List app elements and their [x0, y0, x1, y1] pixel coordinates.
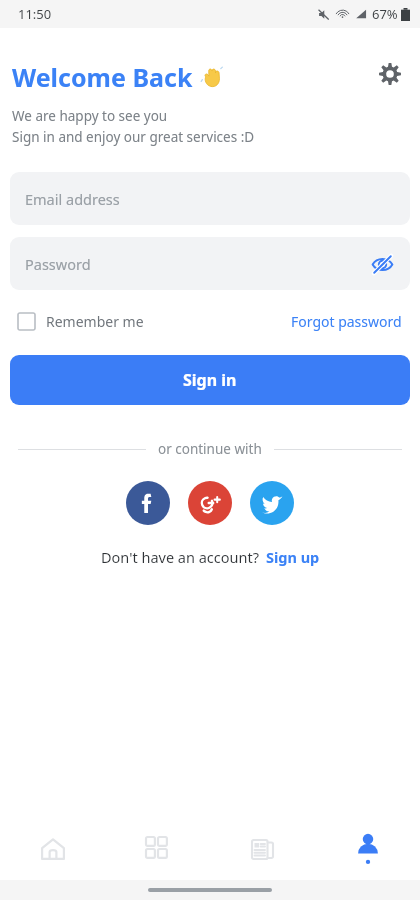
button[interactable]: Settings [368, 52, 412, 96]
staticText: Forgot password [291, 312, 402, 331]
staticText: Sign in and enjoy our great services :D [12, 128, 255, 146]
staticText: Sign in [183, 369, 237, 391]
button[interactable]: Profile [315, 818, 420, 880]
button[interactable]: Show password [364, 246, 400, 282]
staticText: 67% [372, 5, 398, 23]
staticText: Remember me [46, 312, 144, 331]
staticText: Sign up [266, 547, 320, 567]
button[interactable]: Categories [105, 818, 210, 880]
button[interactable]: Remember me [18, 312, 144, 331]
staticText: Don't have an account? [101, 547, 259, 567]
staticText: Password [25, 254, 91, 274]
button[interactable]: Sign in with Twitter [250, 481, 294, 525]
staticText: 11:50 [18, 5, 52, 23]
button[interactable]: News [210, 818, 315, 880]
staticText: We are happy to see you [12, 107, 168, 125]
button[interactable]: Sign in with Google [188, 481, 232, 525]
staticText: Email address [25, 189, 120, 209]
button[interactable]: Sign up [266, 547, 320, 567]
button[interactable]: Password [10, 237, 410, 290]
button[interactable]: Email address [10, 172, 410, 225]
button[interactable]: Sign in with Facebook [126, 481, 170, 525]
button[interactable]: Sign in [10, 355, 410, 405]
button[interactable]: Home [0, 818, 105, 880]
staticText: or continue with [158, 440, 262, 458]
staticText: Welcome Back [12, 60, 193, 94]
button[interactable]: Forgot password [291, 312, 402, 331]
